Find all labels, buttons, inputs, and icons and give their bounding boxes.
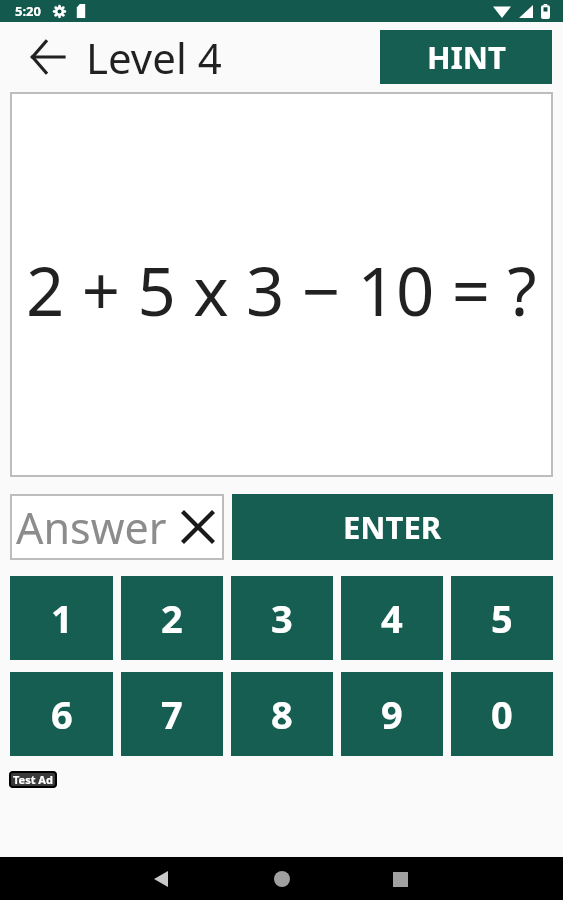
button[interactable]: 3 (231, 576, 333, 660)
staticText: 5:20 (15, 2, 41, 20)
staticText: ENTER (343, 506, 442, 548)
staticText: Level 4 (86, 29, 222, 86)
button[interactable] (262, 859, 302, 899)
staticText: HINT (427, 36, 506, 78)
button[interactable]: ENTER (232, 494, 553, 560)
staticText: Test Ad (13, 772, 53, 787)
staticText: Answer (16, 498, 182, 557)
staticText: 3 (271, 592, 293, 644)
staticText: 5 (491, 592, 513, 644)
button[interactable]: Answer (10, 494, 224, 560)
button[interactable] (22, 31, 74, 83)
button[interactable]: HINT (380, 30, 552, 84)
button[interactable]: 6 (10, 672, 113, 756)
staticText: 6 (51, 688, 73, 740)
staticText: 7 (161, 688, 183, 740)
staticText: 0 (491, 688, 513, 740)
button[interactable]: 5 (451, 576, 553, 660)
button[interactable]: 4 (341, 576, 443, 660)
button[interactable] (380, 859, 420, 899)
button[interactable]: 7 (121, 672, 223, 756)
staticText: 8 (271, 688, 293, 740)
button[interactable]: 0 (451, 672, 553, 756)
staticText: 2 + 5 x 3 − 10 = ? (26, 244, 537, 335)
staticText: 4 (381, 592, 403, 644)
button[interactable]: 2 (121, 576, 223, 660)
button[interactable]: 8 (231, 672, 333, 756)
staticText: 9 (381, 688, 403, 740)
staticText: 1 (51, 592, 73, 644)
staticText: 2 (161, 592, 183, 644)
button[interactable]: 1 (10, 576, 113, 660)
button[interactable] (182, 511, 214, 543)
button[interactable]: 9 (341, 672, 443, 756)
button[interactable] (141, 859, 181, 899)
